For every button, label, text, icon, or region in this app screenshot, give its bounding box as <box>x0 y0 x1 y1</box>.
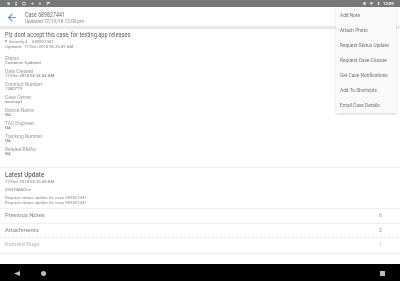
staticText: NA <box>5 151 11 156</box>
staticText: 1280779 <box>5 86 22 91</box>
button[interactable]: Back <box>0 7 22 26</box>
staticText: Severity 4 <box>9 39 28 44</box>
button[interactable]: Back <box>9 265 25 281</box>
staticText: Get Case Notifications <box>340 73 388 79</box>
button[interactable]: Recent apps <box>374 265 390 281</box>
button[interactable]: Request Status Update <box>336 38 396 53</box>
staticText: Request Case Closure <box>340 58 387 64</box>
staticText: Attach Photo <box>340 28 368 34</box>
staticText: Attachments <box>5 227 39 234</box>
button[interactable]: Home <box>35 265 51 281</box>
staticText: Email Case Details <box>340 103 380 109</box>
staticText: 2 <box>379 227 382 233</box>
staticText: Plz dont accept this case, for testing a… <box>5 31 130 39</box>
button[interactable]: Related Bugs <box>0 237 400 251</box>
staticText: NA <box>5 138 11 143</box>
staticText: Updated 12/19/18 12:09 pm <box>25 19 85 25</box>
staticText: 17-Dec-2018 06:34:04 AM <box>5 73 55 78</box>
staticText: Date Created <box>5 68 34 74</box>
button[interactable]: Get Case Notifications <box>336 68 396 83</box>
staticText: Request status update for case 689827441 <box>5 195 87 200</box>
staticText: Contract Number <box>5 81 43 87</box>
button[interactable]: Add Note <box>336 8 396 23</box>
staticText: 1 <box>379 241 382 247</box>
staticText: Request status update for case 689827441 <box>5 200 87 205</box>
staticText: Updated: 17-Dec-2018 06:35:49 AM <box>5 44 74 49</box>
staticText: 689827441 <box>32 39 54 44</box>
staticText: 12:09 <box>383 1 394 6</box>
staticText: 6 <box>379 212 382 218</box>
staticText: Customer Updated <box>5 60 41 65</box>
button[interactable]: Add To Shortcuts <box>336 83 396 98</box>
staticText: Status <box>5 55 19 61</box>
staticText: Add Note <box>340 13 361 19</box>
staticText: Related Bugs <box>5 241 40 248</box>
staticText: Request Status Update <box>340 43 389 49</box>
staticText: Case Owner <box>5 94 32 100</box>
staticText: TAC Engineer <box>5 120 35 126</box>
staticText: SVO RMAOne <box>5 187 31 192</box>
staticText: NA <box>5 125 11 130</box>
staticText: Add To Shortcuts <box>340 88 377 94</box>
staticText: Latest Update <box>5 171 45 178</box>
button[interactable]: Attach Photo <box>336 23 396 38</box>
staticText: asomsa1 <box>5 99 23 104</box>
staticText: Related RMAs <box>5 146 36 152</box>
staticText: Previous Notes <box>5 212 45 219</box>
button[interactable]: Attachments <box>0 223 400 237</box>
button[interactable]: Request Case Closure <box>336 53 396 68</box>
staticText: 17-Dec-2018 06:35:48 AM <box>5 179 55 184</box>
button[interactable]: Previous Notes <box>0 208 400 222</box>
button[interactable]: Email Case Details <box>336 98 396 113</box>
staticText: Device Name <box>5 107 34 113</box>
staticText: Tracking Number <box>5 133 43 139</box>
staticText: Case 689827441 <box>25 11 65 19</box>
staticText: NA <box>5 112 11 117</box>
